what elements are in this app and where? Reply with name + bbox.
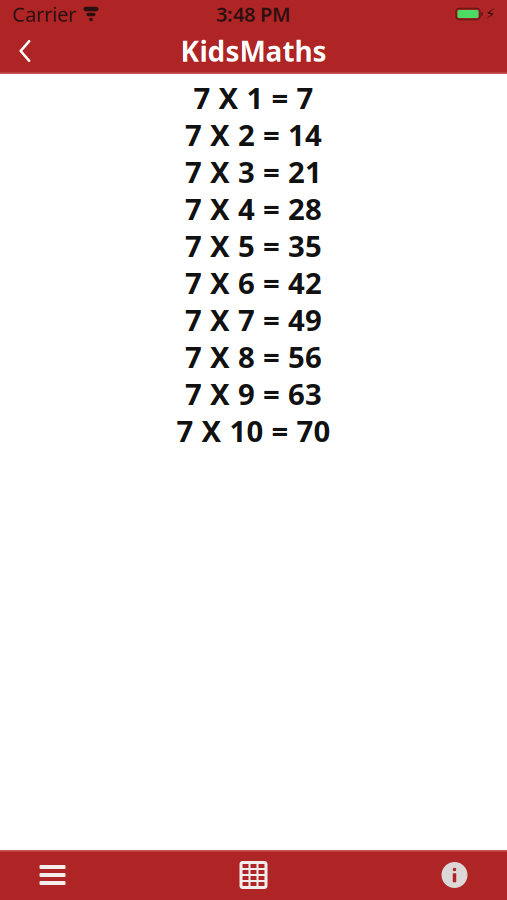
staticText: 7 X 7 = 49 — [185, 300, 322, 339]
staticText: 7 X 5 = 35 — [185, 226, 322, 265]
staticText: 3:48 PM — [216, 1, 291, 27]
staticText: 7 X 8 = 56 — [185, 337, 322, 376]
staticText: ⚡︎ — [485, 6, 495, 22]
staticText: 7 X 9 = 63 — [185, 374, 322, 413]
button[interactable]: Menu — [0, 850, 169, 900]
staticText: Carrier — [12, 1, 76, 27]
button[interactable]: Back — [0, 28, 50, 74]
staticText: 7 X 6 = 42 — [185, 263, 322, 302]
staticText: 7 X 10 = 70 — [176, 411, 330, 450]
button[interactable]: Info — [338, 850, 507, 900]
staticText: 7 X 2 = 14 — [185, 115, 322, 154]
staticText: 7 X 3 = 21 — [185, 152, 322, 191]
button[interactable]: Tables — [169, 850, 338, 900]
staticText: 7 X 1 = 7 — [193, 78, 313, 117]
staticText: 7 X 4 = 28 — [185, 189, 322, 228]
staticText: KidsMaths — [180, 32, 326, 70]
